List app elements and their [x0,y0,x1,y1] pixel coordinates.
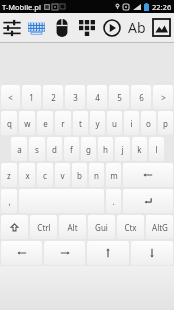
button[interactable]: Ctrl [30,215,57,239]
button[interactable]: q [1,111,17,135]
button[interactable]: j [115,137,130,161]
staticText: AltG [152,222,168,233]
button[interactable]: i [124,111,139,135]
button[interactable]: Media controls [99,13,124,42]
button[interactable]: t [73,111,88,135]
button[interactable]: Shift [1,215,28,239]
button[interactable]: Image [149,13,174,42]
button[interactable]: n [89,163,104,187]
button[interactable]: 4 [87,85,107,109]
button[interactable]: h [98,137,113,161]
staticText: 3 [73,92,78,103]
staticText: Alt [67,222,78,233]
button[interactable]: 6 [131,85,151,109]
button[interactable]: Backspace [123,163,173,187]
button[interactable]: Text entry [124,13,149,42]
staticText: > [161,92,166,103]
button[interactable]: 3 [65,85,85,109]
staticText: < [8,92,13,103]
staticText: b [77,170,82,181]
button[interactable]: l [149,137,164,161]
button[interactable]: o [141,111,156,135]
staticText: j [121,144,124,155]
staticText: 4 [95,92,100,103]
button[interactable]: g [81,137,96,161]
button[interactable]: k [132,137,147,161]
staticText: h [103,144,108,155]
button[interactable]: x [19,163,35,187]
button[interactable]: m [106,163,121,187]
staticText: f [70,144,73,155]
staticText: c [43,170,47,181]
button[interactable]: b [72,163,87,187]
button[interactable]: Down [131,241,173,265]
button[interactable]: . [106,189,121,213]
button[interactable]: Space [19,189,104,213]
button[interactable]: a [11,137,27,161]
staticText: a [17,144,22,155]
staticText: y [95,118,100,129]
button[interactable]: Right [44,241,85,265]
staticText: w [24,118,31,129]
staticText: l [155,144,158,155]
staticText: Ab [128,18,146,37]
staticText: T-Mobile.pl [2,2,41,12]
button[interactable]: Mouse [49,13,74,42]
staticText: 2 [51,92,56,103]
staticText: 6 [139,92,144,103]
staticText: q [7,118,12,129]
button[interactable]: y [90,111,105,135]
button[interactable]: v [55,163,70,187]
staticText: o [146,118,151,129]
staticText: Ctrl [37,222,51,233]
staticText: . [112,196,115,207]
staticText: v [60,170,65,181]
button[interactable]: Settings [0,13,24,42]
staticText: z [7,170,11,181]
button[interactable]: s [29,137,45,161]
button[interactable]: Up [87,241,129,265]
staticText: Ctx [124,222,137,233]
staticText: n [94,170,99,181]
staticText: s [35,144,39,155]
button[interactable]: w [19,111,35,135]
button[interactable]: Keyboard [24,13,49,42]
button[interactable]: Left [1,241,42,265]
staticText: , [8,196,11,207]
button[interactable]: p [158,111,173,135]
button[interactable]: 1 [22,85,41,109]
staticText: e [43,118,48,129]
button[interactable]: , [1,189,17,213]
button[interactable]: f [64,137,79,161]
staticText: 1 [29,92,34,103]
staticText: g [86,144,91,155]
button[interactable]: Alt [59,215,86,239]
staticText: r [61,118,65,129]
staticText: i [130,118,133,129]
staticText: d [52,144,57,155]
button[interactable]: d [47,137,62,161]
staticText: t [79,118,82,129]
button[interactable]: e [37,111,53,135]
button[interactable]: 5 [109,85,129,109]
button[interactable]: z [1,163,17,187]
staticText: p [163,118,168,129]
button[interactable]: Ctx [117,215,144,239]
staticText: x [25,170,30,181]
staticText: 22:26 [152,2,172,12]
button[interactable]: Numeric keypad [74,13,99,42]
button[interactable]: r [55,111,71,135]
staticText: k [137,144,142,155]
button[interactable]: < [1,85,20,109]
button[interactable]: Gui [88,215,115,239]
button[interactable]: AltG [146,215,173,239]
staticText: m [110,170,118,181]
staticText: u [112,118,117,129]
button[interactable]: 2 [43,85,63,109]
staticText: Gui [95,222,108,233]
button[interactable]: > [153,85,173,109]
button[interactable]: u [107,111,122,135]
button[interactable]: Enter [123,189,173,213]
staticText: 5 [117,92,122,103]
button[interactable]: c [37,163,53,187]
